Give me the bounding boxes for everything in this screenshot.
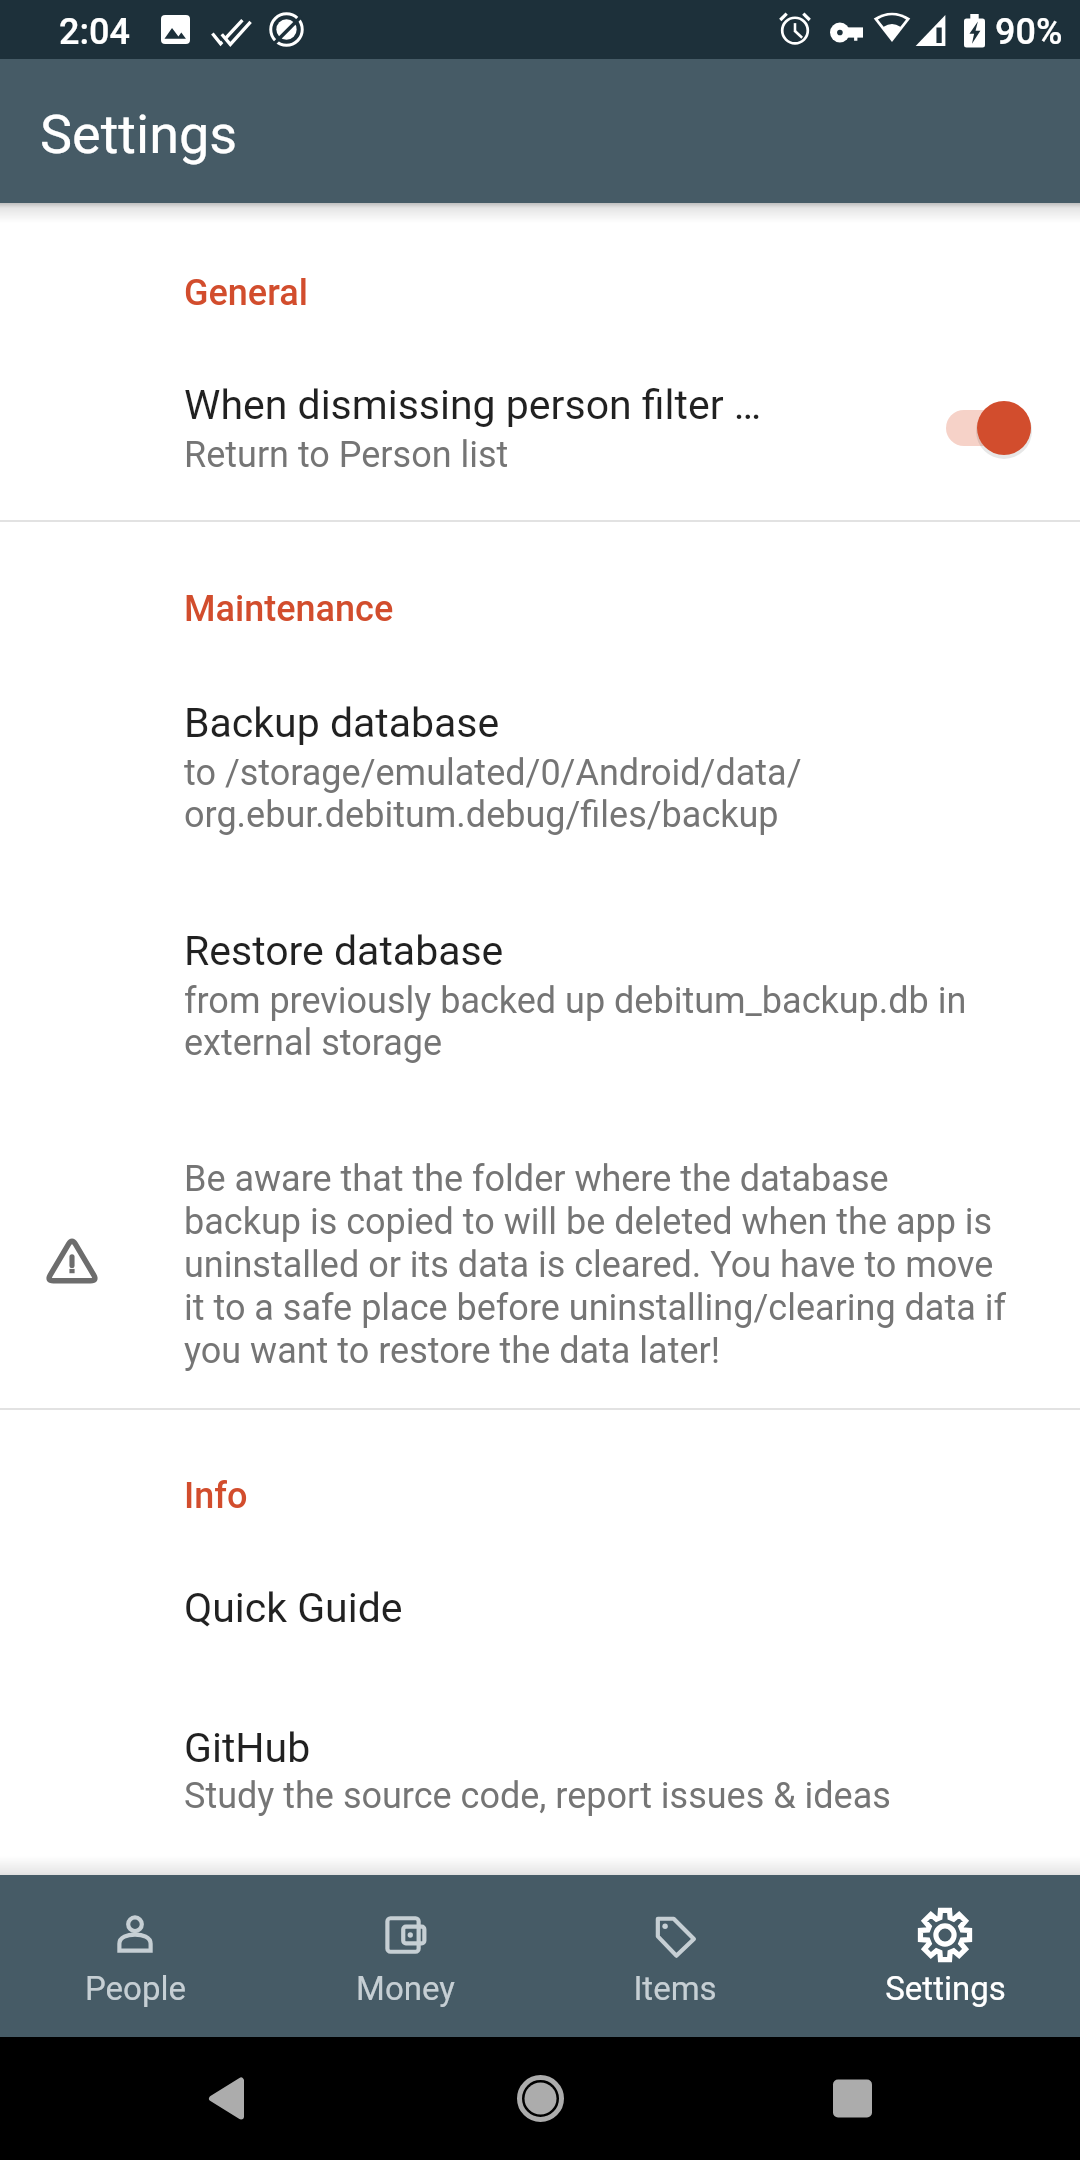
button[interactable]: Settings [810, 1875, 1080, 2037]
button[interactable]: Back [180, 2037, 300, 2160]
staticText: People [85, 1969, 186, 2008]
staticText: When dismissing person filter … [184, 381, 762, 429]
button[interactable]: Restore database [0, 890, 1080, 1105]
button[interactable]: Quick Guide [0, 1545, 1080, 1665]
staticText: 90% [995, 11, 1063, 53]
button[interactable]: GitHub [0, 1685, 1080, 1840]
button[interactable]: People [0, 1875, 270, 2037]
staticText: Quick Guide [184, 1584, 403, 1632]
staticText: to /storage/emulated/0/Android/data/ org… [184, 752, 802, 836]
staticText: Study the source code, report issues & i… [184, 1775, 891, 1817]
button[interactable]: Recent apps [793, 2037, 913, 2160]
staticText: from previously backed up debitum_backup… [184, 980, 967, 1064]
staticText: Info [184, 1475, 248, 1517]
staticText: General [184, 272, 309, 314]
staticText: Settings [40, 103, 238, 166]
staticText: 2:04 [59, 11, 130, 53]
staticText: Items [633, 1969, 717, 2008]
button[interactable]: Money [270, 1875, 540, 2037]
staticText: Be aware that the folder where the datab… [184, 1158, 1014, 1372]
staticText: Return to Person list [184, 434, 509, 476]
other: Warning [45, 1233, 99, 1287]
staticText: Money [356, 1969, 455, 2008]
button[interactable]: Return to Person list toggle, on [935, 398, 1031, 458]
staticText: GitHub [184, 1724, 311, 1772]
button[interactable]: Home [480, 2037, 600, 2160]
staticText: Settings [885, 1969, 1006, 2008]
button[interactable]: Backup database [0, 660, 1080, 880]
button[interactable]: When dismissing person filter … [0, 340, 1080, 515]
staticText: Restore database [184, 927, 504, 975]
button[interactable]: Items [540, 1875, 810, 2037]
staticText: Backup database [184, 699, 500, 747]
staticText: Maintenance [184, 588, 394, 630]
